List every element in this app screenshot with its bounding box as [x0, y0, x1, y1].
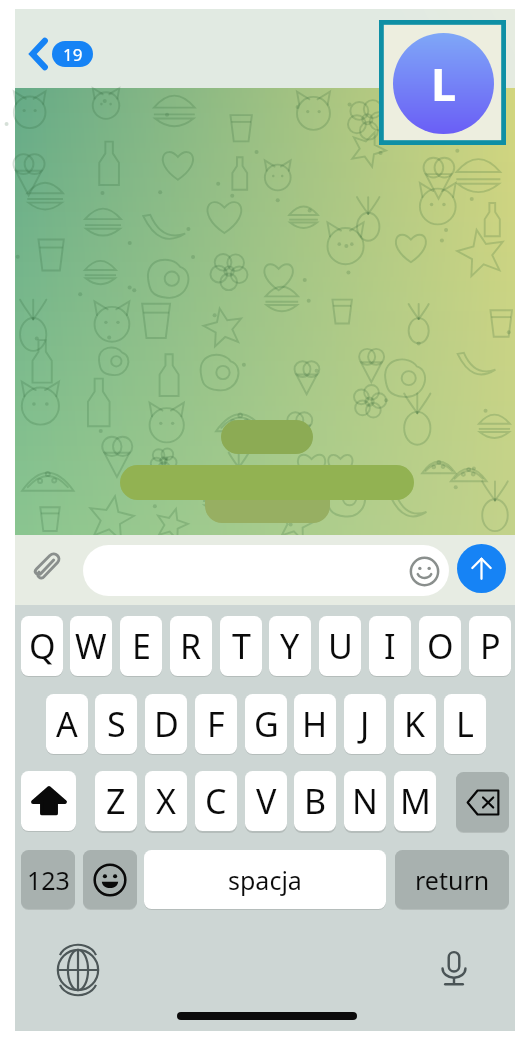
staticText: L [431, 53, 457, 114]
button[interactable]: S [95, 694, 137, 754]
button[interactable]: Z [95, 771, 137, 831]
button[interactable]: I [369, 616, 411, 676]
button[interactable]: T [220, 616, 262, 676]
button[interactable]: A [46, 694, 88, 754]
button[interactable]: E [120, 616, 162, 676]
staticText: I [384, 623, 396, 669]
button[interactable]: C [195, 771, 237, 831]
staticText: G [254, 701, 279, 747]
staticText: C [205, 778, 227, 824]
button[interactable]: return [395, 850, 509, 909]
staticText: F [207, 701, 225, 747]
button[interactable]: B [294, 771, 336, 831]
staticText: K [404, 701, 426, 747]
button[interactable]: R [170, 616, 212, 676]
button[interactable]: D [145, 694, 187, 754]
button[interactable]: Emoji [83, 545, 449, 596]
button[interactable]: Backspace [456, 772, 509, 832]
staticText: R [180, 623, 202, 669]
button[interactable]: G [245, 694, 287, 754]
button[interactable]: X [145, 771, 187, 831]
staticText: L [456, 701, 474, 747]
button[interactable]: M [394, 771, 436, 831]
staticText: H [302, 701, 328, 747]
button[interactable]: Y [269, 616, 311, 676]
button[interactable]: Send [457, 544, 506, 593]
staticText: A [56, 701, 78, 747]
button[interactable]: Shift [21, 771, 76, 831]
button[interactable]: W [70, 616, 112, 676]
staticText: V [256, 778, 277, 824]
button[interactable]: Change keyboard [56, 948, 100, 992]
button[interactable]: L [393, 33, 494, 134]
button[interactable]: K [394, 694, 436, 754]
staticText: B [304, 778, 327, 824]
staticText: M [400, 778, 431, 824]
staticText: D [154, 701, 179, 747]
staticText: T [232, 623, 251, 669]
staticText: S [107, 701, 126, 747]
staticText: return [415, 863, 490, 897]
button[interactable]: Attach [23, 544, 69, 590]
staticText: spacja [228, 863, 302, 897]
button[interactable]: V [245, 771, 287, 831]
staticText: J [360, 701, 370, 747]
button[interactable]: Emoji [83, 850, 137, 909]
button[interactable]: spacja [144, 850, 386, 909]
button[interactable]: H [294, 694, 336, 754]
button[interactable]: Numbers [21, 850, 75, 909]
staticText: X [156, 778, 176, 824]
button[interactable]: N [344, 771, 386, 831]
button[interactable]: Emoji [404, 551, 444, 591]
button[interactable]: Q [21, 616, 63, 676]
staticText: Q [29, 623, 56, 669]
staticText: U [328, 623, 353, 669]
staticText: 123 [27, 863, 70, 897]
button[interactable]: Back [24, 33, 100, 75]
button[interactable]: J [344, 694, 386, 754]
staticText: P [480, 623, 501, 669]
button[interactable]: O [419, 616, 461, 676]
staticText: Y [280, 623, 300, 669]
button[interactable]: P [469, 616, 511, 676]
staticText: E [132, 623, 151, 669]
button[interactable]: U [319, 616, 361, 676]
button[interactable]: F [195, 694, 237, 754]
staticText: Z [106, 778, 126, 824]
button[interactable]: L [444, 694, 486, 754]
staticText: N [352, 778, 378, 824]
staticText: 19 [63, 43, 83, 66]
staticText: W [75, 623, 107, 669]
button[interactable]: Dictate [432, 946, 476, 990]
staticText: O [427, 623, 454, 669]
